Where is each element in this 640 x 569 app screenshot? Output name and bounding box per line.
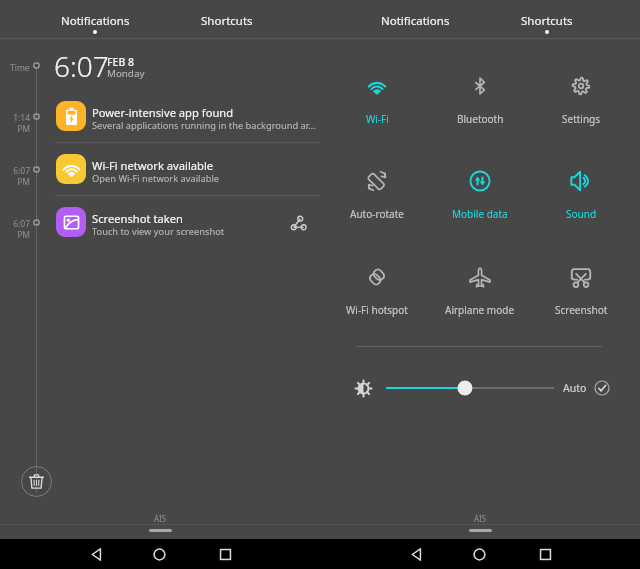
button[interactable]: Settings [531, 75, 631, 126]
button[interactable]: Shortcuts [167, 0, 287, 38]
staticText: 6:07 [0, 218, 30, 230]
staticText: Wi-Fi hotspot [346, 303, 408, 317]
button[interactable]: Home [139, 539, 179, 569]
button[interactable]: Back [76, 539, 116, 569]
button[interactable]: Auto-rotate [327, 170, 427, 221]
staticText: Open Wi-Fi network available [92, 172, 318, 185]
staticText: Auto-rotate [350, 207, 404, 221]
staticText: Shortcuts [521, 13, 573, 29]
staticText: AIS [154, 513, 167, 524]
staticText: PM [0, 229, 30, 241]
button[interactable]: Back [396, 539, 436, 569]
button[interactable]: 1:14 [0, 90, 320, 142]
staticText: Screenshot [555, 303, 608, 317]
staticText: Time [10, 62, 30, 74]
staticText: Notifications [381, 13, 450, 29]
button[interactable]: Shortcuts [487, 0, 607, 38]
staticText: Power-intensive app found [92, 105, 314, 120]
button[interactable]: Wi-Fi [327, 75, 427, 126]
staticText: PM [0, 123, 30, 135]
button[interactable]: Mobile data [430, 170, 530, 221]
staticText: Mobile data [452, 207, 508, 221]
staticText: Wi-Fi [366, 112, 389, 126]
button[interactable]: Brightness slider [380, 375, 560, 401]
staticText: 6:07 [54, 47, 109, 85]
button[interactable]: Notifications [355, 0, 475, 38]
staticText: Several applications running in the back… [92, 119, 318, 132]
staticText: FEB 8 [107, 55, 134, 69]
staticText: 1:14 [0, 112, 30, 124]
staticText: Screenshot taken [92, 211, 277, 226]
button[interactable]: Recents [525, 539, 565, 569]
button[interactable]: Bluetooth [430, 75, 530, 126]
button[interactable]: Clear all notifications [21, 466, 52, 497]
staticText: Airplane mode [445, 303, 515, 317]
staticText: Notifications [61, 13, 130, 29]
button[interactable]: Notifications [35, 0, 155, 38]
staticText: Settings [562, 112, 601, 126]
button[interactable]: Share [284, 209, 312, 237]
staticText: Auto [563, 381, 587, 395]
button[interactable]: Airplane mode [430, 266, 530, 317]
staticText: Monday [107, 67, 145, 80]
button[interactable]: 6:07 [0, 143, 320, 195]
staticText: Sound [566, 207, 597, 221]
staticText: Touch to view your screenshot [92, 225, 277, 238]
button[interactable]: Recents [205, 539, 245, 569]
button[interactable]: Brightness [350, 375, 376, 401]
button[interactable]: Auto [563, 375, 610, 401]
staticText: AIS [474, 513, 487, 524]
button[interactable]: Screenshot [531, 266, 631, 317]
button[interactable]: 6:07 [0, 196, 320, 248]
button[interactable]: Wi-Fi hotspot [327, 266, 427, 317]
staticText: 6:07 [0, 165, 30, 177]
staticText: Bluetooth [457, 112, 504, 126]
button[interactable]: Home [459, 539, 499, 569]
button[interactable]: Sound [531, 170, 631, 221]
staticText: PM [0, 176, 30, 188]
staticText: Wi-Fi network available [92, 158, 314, 173]
staticText: Shortcuts [201, 13, 253, 29]
